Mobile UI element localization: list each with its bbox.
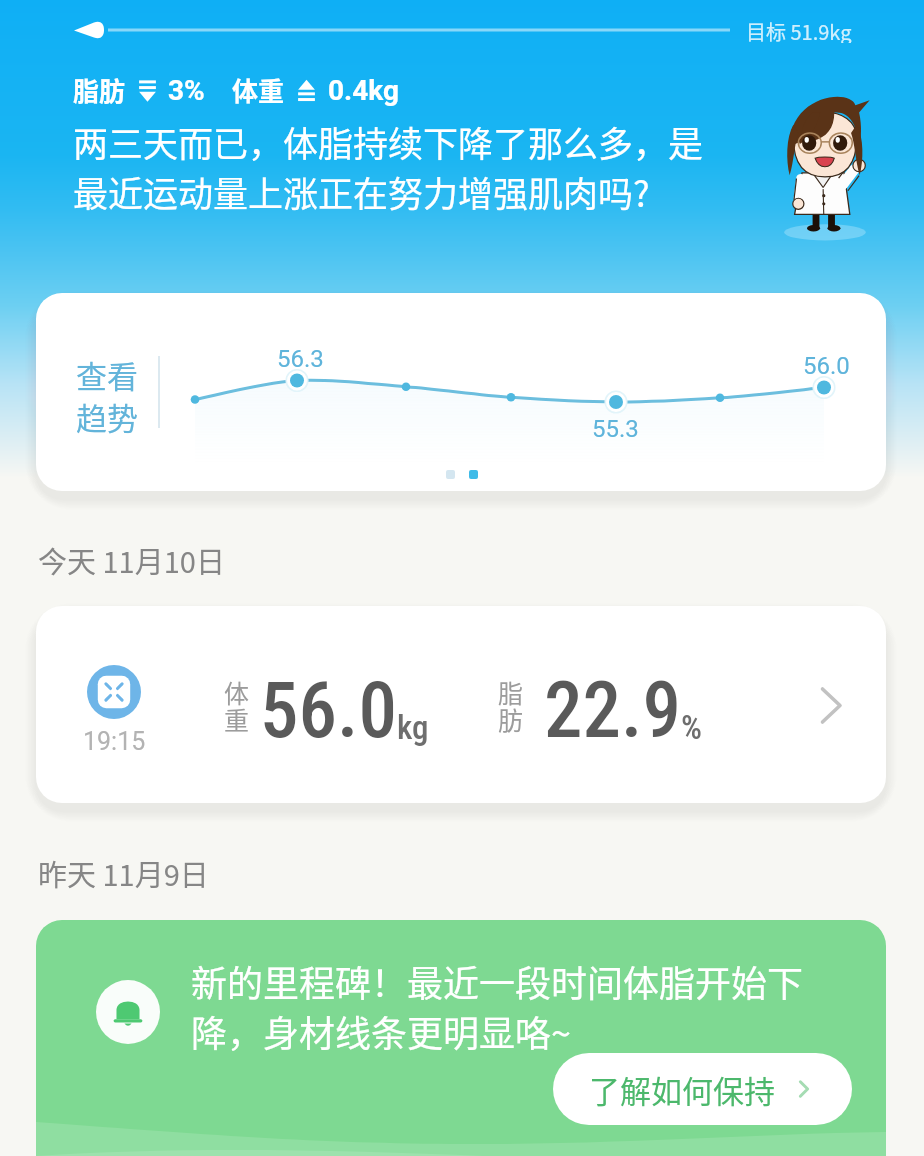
staticText: 目标 51.9kg (746, 17, 852, 43)
staticText: 了解如何保持 (589, 1067, 775, 1112)
staticText: 0.4kg (328, 74, 399, 107)
staticText: 体 重 (224, 674, 250, 737)
staticText: 昨天 11月9日 (38, 852, 209, 894)
staticText: 体重 (232, 71, 285, 109)
staticText: 脂肪 (73, 71, 126, 109)
staticText: 55.3 (592, 415, 639, 443)
staticText: 56.3 (277, 345, 324, 373)
staticText: 56.0 (803, 352, 850, 380)
staticText: % (681, 708, 702, 747)
button[interactable]: 查看 趋势 (36, 293, 886, 491)
staticText: 查看 趋势 (76, 352, 138, 439)
staticText: kg (397, 708, 429, 747)
staticText: 22.9 (544, 666, 681, 756)
staticText: 脂 肪 (498, 674, 524, 737)
staticText: 3% (168, 74, 205, 107)
staticText: 19:15 (83, 727, 146, 756)
staticText: 今天 11月10日 (38, 539, 225, 581)
staticText: 两三天而已，体脂持续下降了那么多，是 最近运动量上涨正在努力增强肌肉吗? (73, 116, 704, 217)
button[interactable]: 了解如何保持 (553, 1053, 852, 1125)
button[interactable]: Details (806, 650, 860, 758)
button[interactable]: 新的里程碑！最近一段时间体脂开始下 降，身材线条更明显咯~ (36, 920, 886, 1156)
button[interactable]: 19:15 (36, 606, 886, 803)
staticText: 56.0 (260, 666, 397, 756)
staticText: 新的里程碑！最近一段时间体脂开始下 降，身材线条更明显咯~ (191, 955, 804, 1057)
